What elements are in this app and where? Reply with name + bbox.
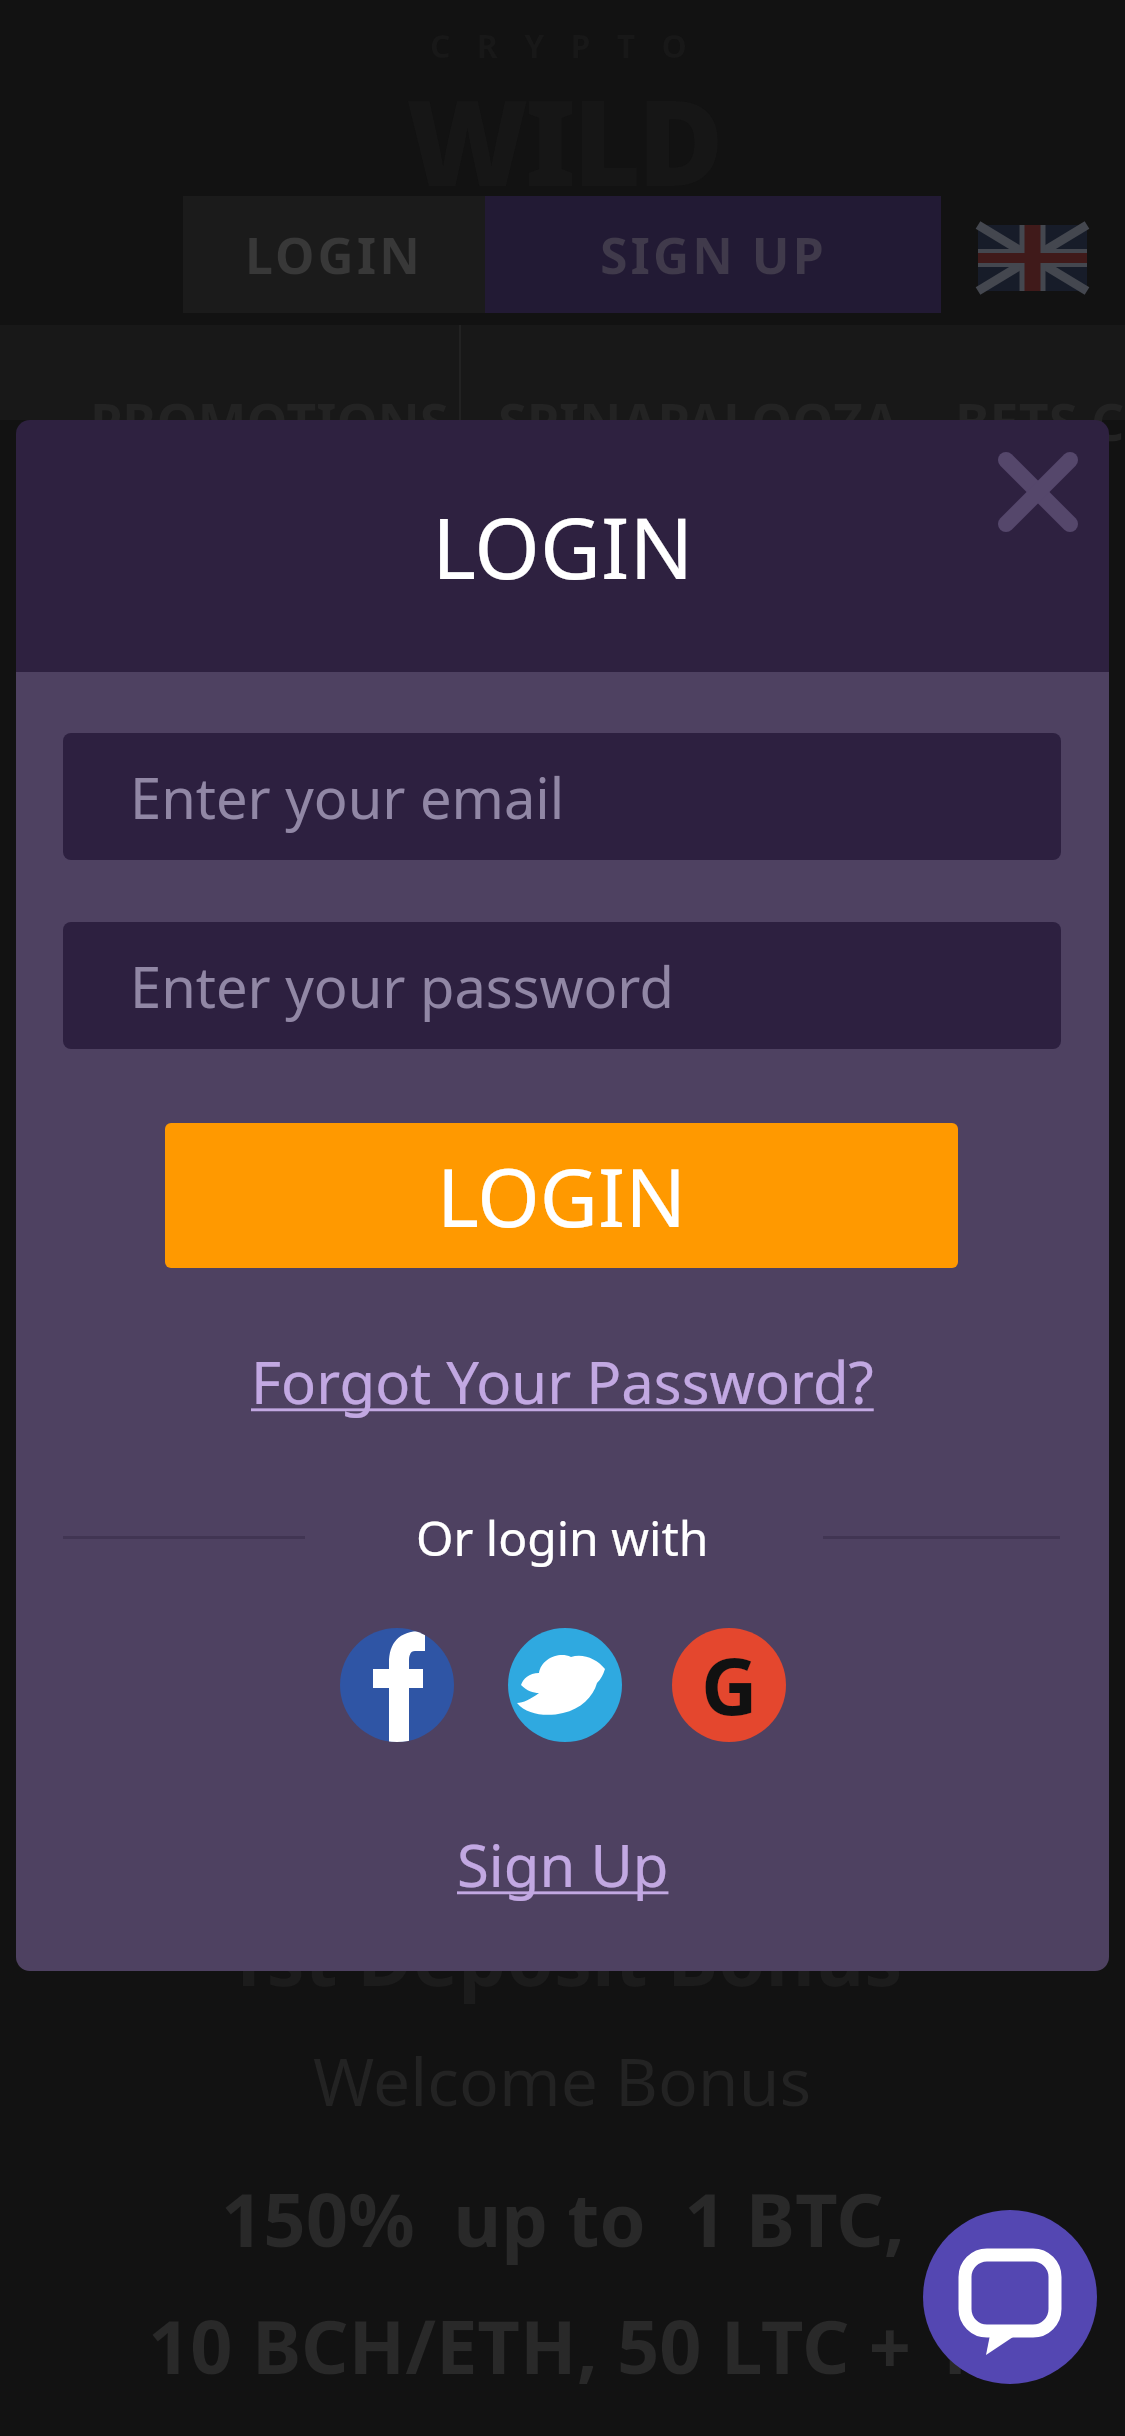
staticText: 1st Deposit Bonus <box>223 1905 903 2009</box>
staticText: Sign Up <box>457 1825 669 1904</box>
button[interactable]: Enter your password <box>63 922 1061 1049</box>
button[interactable]: LOGIN <box>165 1123 958 1268</box>
staticText: Forgot Your Password? <box>251 1342 874 1418</box>
button[interactable]: Enter your email <box>63 733 1061 860</box>
staticText: LOGIN <box>245 221 423 289</box>
staticText: Welcome Bonus <box>313 2035 812 2125</box>
button[interactable]: Forgot Your Password? <box>16 1342 1109 1418</box>
staticText: 150% up to 1 BTC, <box>221 2168 905 2269</box>
staticText: BETS CO <box>955 385 1125 456</box>
staticText: Enter your password <box>130 948 674 1024</box>
button[interactable]: Sign Up <box>16 1824 1109 1904</box>
button[interactable]: G <box>672 1628 786 1742</box>
staticText: G <box>701 1632 758 1738</box>
staticText: LOGIN <box>437 1141 686 1250</box>
staticText: 10 BCH/ETH, 50 LTC + 15 <box>148 2295 1015 2396</box>
staticText: Or login with <box>416 1505 709 1570</box>
button[interactable]: SIGN UP <box>485 196 941 313</box>
staticText: LOGIN <box>432 489 694 603</box>
button[interactable] <box>508 1628 622 1742</box>
button[interactable] <box>340 1628 454 1742</box>
staticText: SPINAPALOOZA <box>498 385 899 456</box>
staticText: SIGN UP <box>600 221 827 289</box>
staticText: WILD <box>406 60 720 221</box>
button[interactable] <box>923 2210 1097 2384</box>
button[interactable] <box>978 432 1098 552</box>
button[interactable]: LOGIN <box>183 196 485 313</box>
staticText: PROMOTIONS <box>90 385 449 456</box>
button[interactable] <box>978 225 1087 291</box>
staticText: Enter your email <box>130 759 565 835</box>
